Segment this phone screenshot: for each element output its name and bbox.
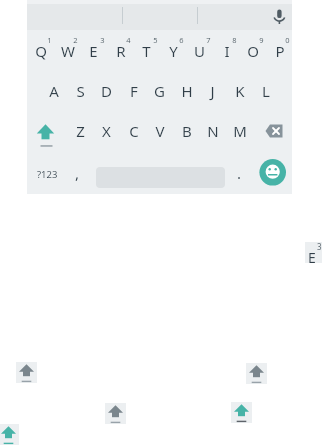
button[interactable]: B xyxy=(173,111,200,151)
button[interactable]: H xyxy=(173,71,200,111)
staticText: Y xyxy=(169,41,178,61)
staticText: F xyxy=(130,81,138,101)
button[interactable]: L xyxy=(252,71,279,111)
button[interactable]: T xyxy=(133,31,160,71)
button[interactable]: P xyxy=(266,31,293,71)
button[interactable]: V xyxy=(146,111,173,151)
button[interactable] xyxy=(27,112,66,152)
staticText: 7 xyxy=(206,35,211,45)
button[interactable]: , xyxy=(64,153,90,193)
button[interactable]: ?123 xyxy=(27,154,67,194)
staticText: M xyxy=(233,121,247,141)
button[interactable]: U xyxy=(186,31,213,71)
staticText: . xyxy=(237,163,242,183)
staticText: 9 xyxy=(259,35,264,45)
button[interactable]: O xyxy=(239,31,266,71)
staticText: O xyxy=(247,41,259,61)
button[interactable] xyxy=(246,363,267,384)
button[interactable]: C xyxy=(120,111,147,151)
button[interactable]: G xyxy=(146,71,173,111)
staticText: 0 xyxy=(285,35,290,45)
staticText: Z xyxy=(76,121,85,141)
button[interactable] xyxy=(231,402,252,423)
staticText: T xyxy=(142,41,151,61)
staticText: U xyxy=(194,41,205,61)
button[interactable]: S xyxy=(67,71,94,111)
staticText: E xyxy=(308,248,316,267)
button[interactable]: E xyxy=(80,31,107,71)
staticText: S xyxy=(76,81,85,101)
button[interactable]: N xyxy=(199,111,226,151)
staticText: Q xyxy=(35,41,47,61)
staticText: I xyxy=(224,41,230,61)
staticText: C xyxy=(129,121,139,141)
button[interactable] xyxy=(105,403,126,424)
staticText: W xyxy=(61,41,75,61)
button[interactable]: D xyxy=(93,71,120,111)
staticText: B xyxy=(182,121,192,141)
staticText: ?123 xyxy=(37,168,58,181)
button[interactable] xyxy=(16,362,37,383)
staticText: 1 xyxy=(47,35,52,45)
button[interactable] xyxy=(259,159,286,186)
button[interactable]: A xyxy=(40,71,67,111)
staticText: P xyxy=(275,41,285,61)
staticText: G xyxy=(154,81,165,101)
button[interactable]: R xyxy=(107,31,134,71)
staticText: E xyxy=(89,41,98,61)
button[interactable]: X xyxy=(93,111,120,151)
button[interactable] xyxy=(263,0,292,30)
button[interactable]: J xyxy=(199,71,226,111)
button[interactable]: . xyxy=(226,153,252,193)
button[interactable]: Y xyxy=(160,31,187,71)
staticText: 3 xyxy=(100,35,105,45)
staticText: D xyxy=(101,81,112,101)
button[interactable]: Z xyxy=(67,111,94,151)
staticText: N xyxy=(207,121,219,141)
staticText: A xyxy=(49,81,59,101)
button[interactable] xyxy=(253,112,292,152)
button[interactable]: F xyxy=(120,71,147,111)
staticText: 2 xyxy=(73,35,78,45)
staticText: 6 xyxy=(179,35,184,45)
button[interactable]: K xyxy=(226,71,253,111)
button[interactable]: W xyxy=(54,31,81,71)
staticText: L xyxy=(262,81,270,101)
staticText: V xyxy=(155,121,165,141)
staticText: 8 xyxy=(232,35,237,45)
staticText: 4 xyxy=(126,35,131,45)
button[interactable]: Q xyxy=(27,31,54,71)
button[interactable]: I xyxy=(213,31,240,71)
staticText: X xyxy=(102,121,111,141)
button[interactable] xyxy=(0,424,19,445)
staticText: H xyxy=(181,81,193,101)
staticText: J xyxy=(210,81,215,101)
staticText: R xyxy=(116,41,126,61)
staticText: 5 xyxy=(153,35,158,45)
button[interactable]: M xyxy=(226,111,253,151)
staticText: , xyxy=(75,163,80,183)
staticText: K xyxy=(235,81,245,101)
staticText: 3 xyxy=(317,241,322,252)
